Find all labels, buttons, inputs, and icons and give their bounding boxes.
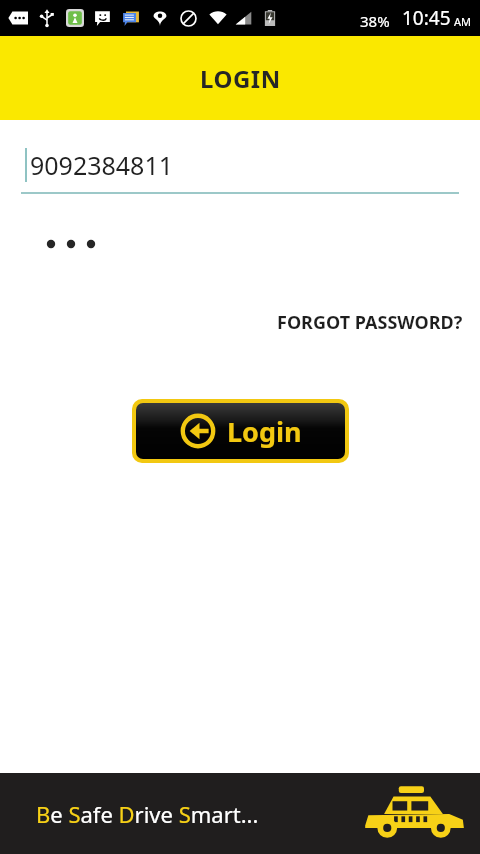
staticText: 10:45 — [402, 5, 451, 31]
staticText: 38% — [360, 11, 390, 31]
button[interactable]: Password — [21, 224, 459, 264]
staticText: AM — [454, 14, 472, 29]
staticText: LOGIN — [200, 62, 281, 95]
button[interactable]: Login — [132, 399, 349, 463]
staticText: FORGOT PASSWORD? — [277, 310, 463, 335]
staticText: 9092384811 — [30, 148, 174, 182]
button[interactable]: FORGOT PASSWORD? — [275, 306, 465, 339]
staticText: Be Safe Drive Smart... — [36, 799, 259, 829]
staticText: Login — [227, 413, 302, 450]
button[interactable]: 9092384811 — [21, 148, 459, 194]
